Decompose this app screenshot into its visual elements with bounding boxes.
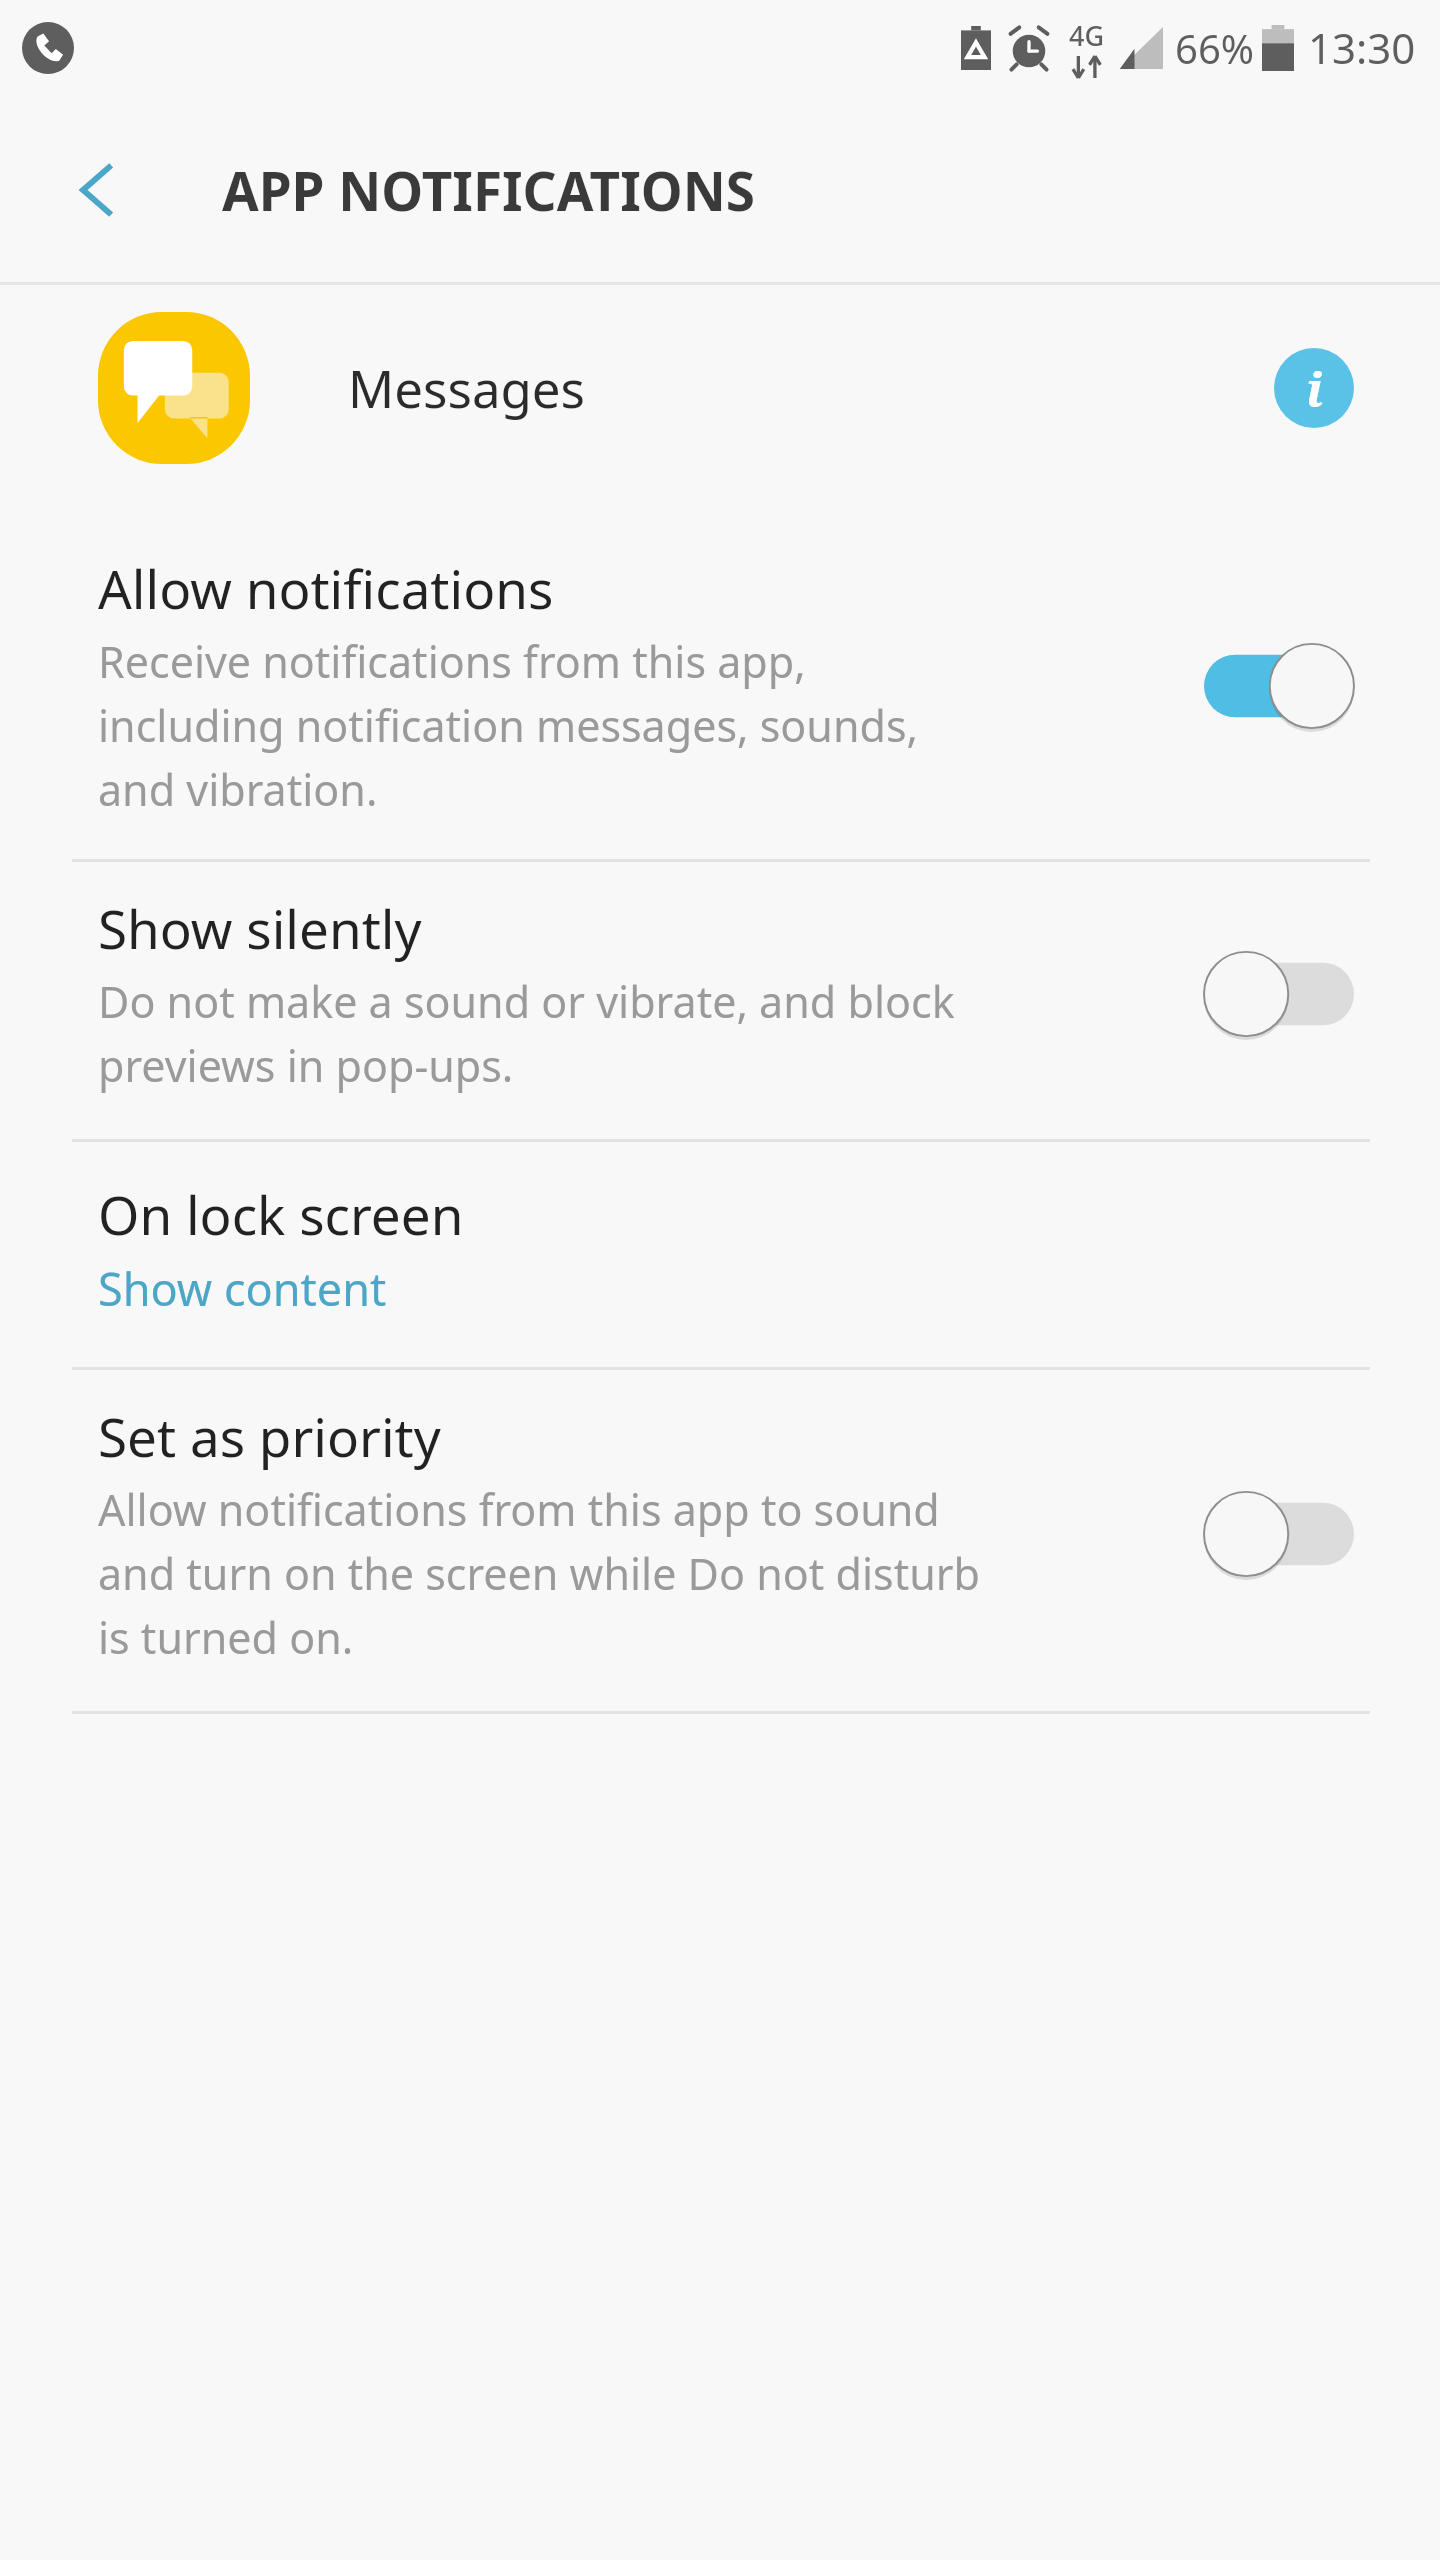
button[interactable]: Messages <box>0 285 1440 490</box>
button[interactable]: App info <box>1274 348 1354 428</box>
button[interactable]: Switch off <box>1204 945 1354 1043</box>
staticText: Show silently <box>98 892 422 964</box>
staticText: On lock screen <box>98 1178 464 1250</box>
staticText: 66% <box>1175 21 1254 75</box>
staticText: Receive notifications from this app, inc… <box>98 632 919 819</box>
button[interactable]: Allow notifications <box>0 534 1440 859</box>
staticText: APP NOTIFICATIONS <box>222 154 756 226</box>
button[interactable]: Switch on <box>1204 637 1354 735</box>
staticText: Allow notifications <box>98 552 554 624</box>
button[interactable]: On lock screen <box>0 1142 1440 1367</box>
button[interactable]: Back <box>52 146 140 234</box>
staticText: 13:30 <box>1308 19 1416 76</box>
button[interactable]: Show silently <box>0 862 1440 1139</box>
staticText: Messages <box>348 353 586 422</box>
staticText: Show content <box>98 1258 387 1319</box>
button[interactable]: Switch off <box>1204 1485 1354 1583</box>
staticText: 4G <box>1069 17 1105 54</box>
staticText: Do not make a sound or vibrate, and bloc… <box>98 972 955 1095</box>
staticText: Set as priority <box>98 1400 441 1472</box>
staticText: Allow notifications from this app to sou… <box>98 1480 980 1667</box>
button[interactable]: Set as priority <box>0 1370 1440 1711</box>
staticText: i <box>1306 356 1323 421</box>
